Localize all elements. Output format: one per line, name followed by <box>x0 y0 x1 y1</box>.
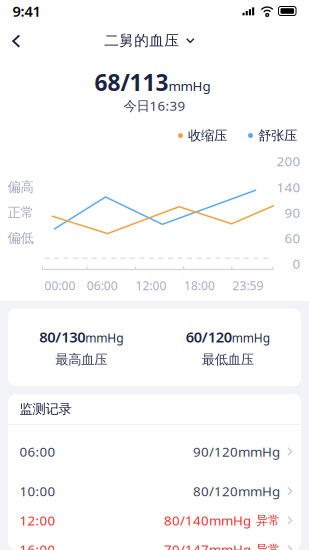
staticText: 异常 <box>256 542 280 550</box>
staticText: mmHg <box>232 330 270 346</box>
staticText: 00:00 <box>44 278 75 294</box>
staticText: 今日16:39 <box>124 97 186 114</box>
staticText: 60 <box>284 229 300 247</box>
staticText: 12:00 <box>19 511 55 529</box>
button[interactable]: 12:00 <box>8 504 301 537</box>
button[interactable]: Back <box>0 25 32 57</box>
staticText: 200 <box>276 152 300 170</box>
staticText: 80/120mmHg <box>193 482 280 500</box>
button[interactable]: 06:00 <box>8 425 301 478</box>
staticText: 舒张压 <box>258 127 297 144</box>
staticText: 18:00 <box>184 278 215 294</box>
staticText: 监测记录 <box>19 401 71 417</box>
staticText: 90 <box>284 204 300 221</box>
staticText: 90/120mmHg <box>193 443 280 460</box>
staticText: 最高血压 <box>55 351 107 368</box>
staticText: mmHg <box>168 77 210 95</box>
staticText: 06:00 <box>19 443 55 460</box>
staticText: 68/113 <box>94 67 168 97</box>
staticText: 140 <box>276 178 300 196</box>
staticText: 80/140mmHg <box>164 511 251 529</box>
staticText: 10:00 <box>19 482 55 500</box>
button[interactable]: 二舅的血压 <box>98 26 201 56</box>
staticText: mmHg <box>85 330 123 346</box>
staticText: 70/147mmHg <box>164 540 251 550</box>
staticText: 12:00 <box>135 278 166 294</box>
staticText: 收缩压 <box>188 127 227 144</box>
staticText: 最低血压 <box>202 351 254 368</box>
staticText: 二舅的血压 <box>104 32 179 50</box>
staticText: 60/120 <box>186 327 232 346</box>
staticText: 9:41 <box>13 1 41 21</box>
staticText: 16:00 <box>19 540 55 550</box>
button[interactable]: 16:00 <box>8 537 301 550</box>
staticText: 0 <box>292 255 300 272</box>
staticText: 偏低 <box>7 230 33 246</box>
staticText: 80/130 <box>39 327 85 346</box>
staticText: 异常 <box>256 513 280 528</box>
staticText: 偏高 <box>7 179 33 195</box>
button[interactable]: 10:00 <box>8 478 301 504</box>
staticText: 06:00 <box>87 278 118 294</box>
staticText: 正常 <box>7 204 33 221</box>
staticText: 23:59 <box>232 278 263 294</box>
